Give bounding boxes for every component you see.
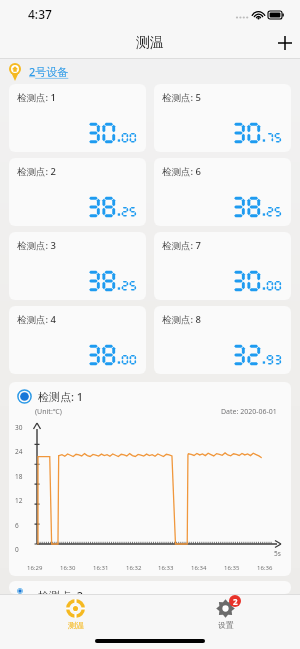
staticText: 0 [15, 545, 19, 554]
button[interactable]: 检测点: 2 [9, 158, 146, 226]
staticText: 2 [233, 596, 238, 607]
staticText: 测温 [68, 620, 84, 630]
button[interactable]: Add [270, 28, 300, 58]
staticText: 检测点: 2 [38, 588, 84, 594]
button[interactable]: 检测点: 3 [9, 232, 146, 300]
button[interactable]: 2 [150, 595, 300, 633]
staticText: 检测点: 5 [162, 91, 201, 104]
staticText: 18 [15, 472, 23, 481]
button[interactable]: 检测点: 4 [9, 306, 146, 374]
staticText: 检测点: 6 [162, 165, 201, 178]
staticText: 检测点: 8 [162, 313, 201, 326]
button[interactable]: 检测点: 2 [9, 581, 291, 594]
button[interactable]: 2号设备 [0, 59, 300, 84]
staticText: 5s [274, 549, 281, 558]
staticText: 24 [15, 447, 23, 456]
button[interactable]: 检测点: 8 [154, 306, 291, 374]
staticText: 2号设备 [29, 64, 69, 79]
button[interactable]: 检测点: 1 [9, 382, 291, 576]
staticText: 设置 [218, 620, 234, 630]
staticText: 30 [15, 423, 23, 432]
staticText: 16:33 [158, 564, 174, 572]
staticText: 测温 [136, 34, 164, 52]
staticText: 16:35 [224, 564, 240, 572]
button[interactable]: 检测点: 5 [154, 84, 291, 152]
staticText: 16:31 [93, 564, 109, 572]
staticText: 16:34 [191, 564, 207, 572]
staticText: 12 [15, 496, 23, 505]
staticText: 16:29 [27, 564, 43, 572]
staticText: 16:30 [60, 564, 76, 572]
staticText: 4:37 [28, 6, 52, 22]
staticText: 检测点: 1 [38, 389, 84, 404]
button[interactable]: 检测点: 1 [9, 84, 146, 152]
staticText: 检测点: 4 [17, 313, 56, 326]
button[interactable]: 检测点: 6 [154, 158, 291, 226]
staticText: 检测点: 1 [17, 91, 56, 104]
button[interactable]: 测温 [0, 595, 150, 633]
staticText: 检测点: 3 [17, 239, 56, 252]
button[interactable]: 检测点: 7 [154, 232, 291, 300]
staticText: Date: 2020-06-01 [221, 407, 277, 417]
staticText: (Unit:℃) [35, 407, 62, 417]
staticText: 检测点: 2 [17, 165, 56, 178]
staticText: 检测点: 7 [162, 239, 201, 252]
staticText: 16:36 [257, 564, 273, 572]
staticText: 6 [15, 521, 19, 530]
staticText: 16:32 [126, 564, 142, 572]
